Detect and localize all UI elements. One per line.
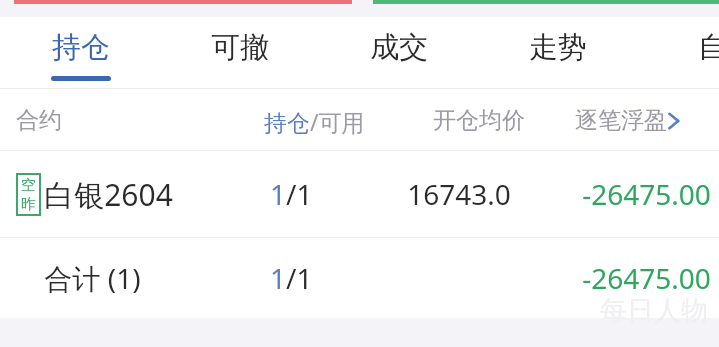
staticText: 逐笔浮盈 — [575, 106, 667, 135]
staticText: 空 — [21, 176, 36, 195]
staticText: 合计 (1) — [44, 259, 141, 297]
staticText: 可撤 — [211, 29, 269, 66]
button[interactable]: 持仓/可用 — [150, 106, 365, 137]
staticText: 走势 — [529, 29, 587, 66]
staticText: 16743.0 — [407, 175, 511, 213]
staticText: 持仓/可用 — [264, 106, 365, 137]
button[interactable]: 成交 — [339, 17, 459, 89]
staticText: 每日人物 — [600, 294, 708, 328]
staticText: 1/1 — [270, 259, 313, 297]
staticText: 自 — [698, 29, 719, 66]
button[interactable]: 持仓 — [21, 17, 141, 89]
staticText: 开仓均价 — [433, 106, 525, 135]
button[interactable]: 切换盈亏列 — [575, 106, 683, 135]
staticText: 成交 — [370, 29, 428, 66]
button[interactable]: 可撤 — [180, 17, 300, 89]
button[interactable]: 自 — [652, 17, 719, 89]
staticText: -26475.00 — [582, 175, 711, 213]
staticText: -26475.00 — [582, 259, 711, 297]
staticText: 昨 — [21, 195, 36, 214]
staticText: 1/1 — [270, 175, 313, 213]
staticText: 持仓 — [52, 29, 110, 66]
staticText: 合约 — [16, 106, 62, 135]
button[interactable]: 走势 — [498, 17, 618, 89]
staticText: 白银2604 — [44, 174, 173, 215]
button[interactable]: 空 — [0, 151, 719, 237]
